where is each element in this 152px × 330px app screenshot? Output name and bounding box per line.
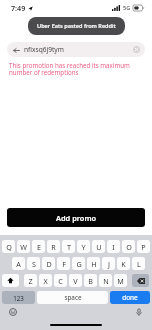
staticText: A bbox=[16, 259, 21, 269]
staticText: K bbox=[121, 259, 126, 269]
button[interactable]: U bbox=[92, 240, 105, 253]
staticText: I bbox=[112, 242, 115, 252]
button[interactable]: F bbox=[57, 257, 70, 270]
button[interactable]: T bbox=[62, 240, 75, 253]
staticText: Q bbox=[6, 242, 12, 252]
button[interactable]: Emoji bbox=[8, 307, 18, 317]
button[interactable]: P bbox=[137, 240, 150, 253]
staticText: 7:49 bbox=[11, 3, 26, 13]
staticText: J bbox=[108, 259, 110, 269]
button[interactable]: L bbox=[132, 257, 145, 270]
button[interactable]: done bbox=[110, 291, 150, 304]
staticText: N bbox=[103, 276, 109, 286]
staticText: X bbox=[43, 276, 48, 286]
button[interactable]: N bbox=[99, 274, 112, 287]
staticText: 5G bbox=[123, 4, 131, 12]
staticText: C bbox=[58, 276, 63, 286]
staticText: done bbox=[122, 293, 138, 302]
staticText: S bbox=[32, 259, 36, 269]
staticText: 123 bbox=[13, 294, 24, 302]
button[interactable]: H bbox=[87, 257, 100, 270]
staticText: U bbox=[96, 242, 102, 252]
staticText: space bbox=[64, 293, 82, 302]
button[interactable]: M bbox=[114, 274, 127, 287]
button[interactable]: S bbox=[27, 257, 40, 270]
button[interactable]: A bbox=[12, 257, 25, 270]
button[interactable]: X bbox=[39, 274, 52, 287]
button[interactable]: G bbox=[72, 257, 85, 270]
button[interactable]: Dictation bbox=[134, 307, 144, 317]
staticText: O bbox=[126, 242, 132, 252]
button[interactable]: Backspace bbox=[132, 274, 149, 287]
button[interactable]: Shift bbox=[2, 274, 19, 287]
staticText: G bbox=[76, 259, 82, 269]
button[interactable]: space bbox=[37, 291, 108, 304]
staticText: F bbox=[62, 259, 66, 269]
button[interactable]: Add promo bbox=[7, 208, 145, 227]
button[interactable]: B bbox=[84, 274, 97, 287]
staticText: T bbox=[67, 242, 71, 252]
button[interactable]: D bbox=[42, 257, 55, 270]
staticText: M bbox=[117, 276, 124, 286]
staticText: W bbox=[20, 242, 27, 252]
button[interactable]: 123 bbox=[2, 291, 35, 304]
button[interactable]: C bbox=[54, 274, 67, 287]
button[interactable]: Y bbox=[77, 240, 90, 253]
staticText: Z bbox=[28, 276, 33, 286]
button[interactable]: Back bbox=[7, 42, 145, 57]
button[interactable]: R bbox=[47, 240, 60, 253]
staticText: Uber Eats pasted from Reddit bbox=[37, 22, 116, 30]
button[interactable]: Uber Eats pasted from Reddit bbox=[37, 22, 116, 30]
staticText: R bbox=[51, 242, 56, 252]
button[interactable]: Z bbox=[24, 274, 37, 287]
button[interactable]: I bbox=[107, 240, 120, 253]
button[interactable]: E bbox=[32, 240, 45, 253]
staticText: This promotion has reached its maximum n… bbox=[9, 61, 143, 77]
staticText: nfixsq6j9tym bbox=[24, 45, 64, 54]
button[interactable]: K bbox=[117, 257, 130, 270]
button[interactable]: V bbox=[69, 274, 82, 287]
button[interactable]: Back bbox=[12, 46, 20, 54]
button[interactable]: J bbox=[102, 257, 115, 270]
button[interactable]: Clear text bbox=[133, 46, 140, 53]
staticText: D bbox=[46, 259, 52, 269]
staticText: P bbox=[141, 242, 146, 252]
button[interactable]: Q bbox=[2, 240, 15, 253]
button[interactable]: O bbox=[122, 240, 135, 253]
staticText: Y bbox=[81, 242, 86, 252]
staticText: L bbox=[137, 259, 141, 269]
staticText: H bbox=[91, 259, 97, 269]
staticText: Add promo bbox=[56, 213, 97, 223]
button[interactable]: W bbox=[17, 240, 30, 253]
staticText: V bbox=[73, 276, 78, 286]
staticText: B bbox=[88, 276, 93, 286]
staticText: E bbox=[37, 242, 41, 252]
